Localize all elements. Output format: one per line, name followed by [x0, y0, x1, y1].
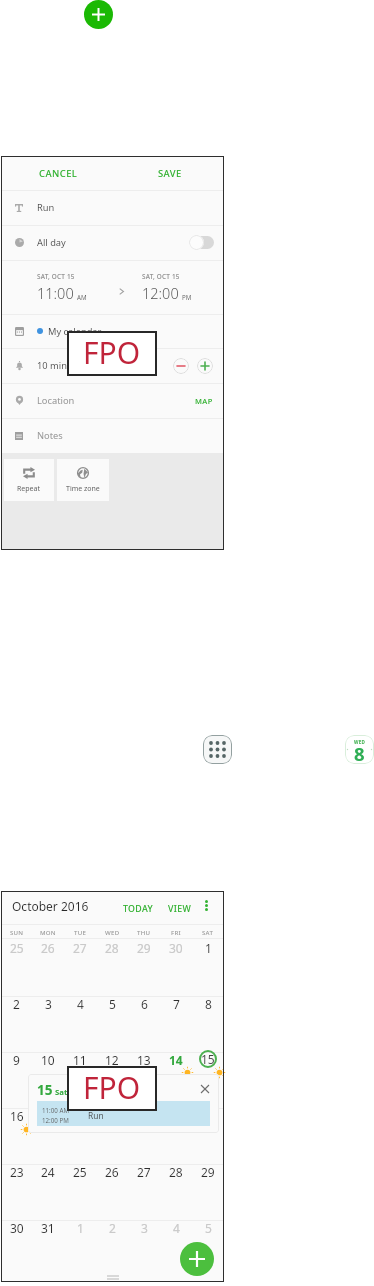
staticText: 2	[13, 996, 20, 1012]
button[interactable]: 21	[160, 1108, 192, 1164]
button[interactable]: 14	[160, 1052, 192, 1108]
button[interactable]	[190, 235, 215, 250]
button[interactable]: 12	[96, 1052, 128, 1108]
staticText: 19	[105, 1108, 119, 1124]
staticText: All day	[37, 236, 66, 249]
staticText: TUE	[74, 928, 87, 936]
button[interactable]: 4	[64, 996, 96, 1052]
button[interactable]: 25	[1, 940, 32, 996]
button[interactable]: 5	[192, 1220, 224, 1276]
button[interactable]: 26	[96, 1164, 128, 1220]
button[interactable]: 2	[1, 996, 32, 1052]
staticText: FPO	[83, 332, 141, 373]
button[interactable]: 17	[32, 1108, 64, 1164]
button[interactable]: More options	[196, 895, 217, 916]
button[interactable]: Location	[1, 383, 224, 418]
staticText: 1	[205, 940, 212, 956]
button[interactable]: Create event	[180, 1242, 214, 1276]
staticText: SAT, OCT 15	[142, 272, 180, 281]
button[interactable]: Repeat	[4, 459, 54, 501]
staticText: MAP	[195, 396, 213, 406]
button[interactable]: Increase reminder	[197, 358, 213, 374]
button[interactable]: 30	[160, 940, 192, 996]
button[interactable]: 1	[192, 940, 224, 996]
staticText: 18	[73, 1108, 87, 1124]
button[interactable]: 29	[128, 940, 160, 996]
button[interactable]: Apps	[203, 735, 232, 764]
button[interactable]: 3	[128, 1220, 160, 1276]
staticText: MON	[40, 928, 56, 936]
staticText: 27	[73, 940, 87, 956]
button[interactable]: 11	[64, 1052, 96, 1108]
staticText: 12:00 PM	[42, 1116, 69, 1124]
button[interactable]: 2	[96, 1220, 128, 1276]
button[interactable]: 4	[160, 1220, 192, 1276]
staticText: CANCEL	[39, 167, 78, 180]
button[interactable]: Decrease reminder	[173, 358, 189, 374]
button[interactable]: Add event	[84, 0, 113, 29]
button[interactable]: 16	[1, 1108, 32, 1164]
staticText: 7	[173, 996, 180, 1012]
staticText: 1	[77, 1220, 84, 1236]
staticText: 28	[105, 940, 119, 956]
button[interactable]: 20	[128, 1108, 160, 1164]
button[interactable]: 25	[64, 1164, 96, 1220]
button[interactable]: 6	[128, 996, 160, 1052]
staticText: 30	[10, 1220, 24, 1236]
button[interactable]: 23	[1, 1164, 32, 1220]
staticText: 13	[137, 1052, 151, 1068]
button[interactable]: Close	[197, 1081, 213, 1097]
button[interactable]: 5	[96, 996, 128, 1052]
button[interactable]: Run	[1, 190, 224, 225]
button[interactable]: MAP	[195, 396, 213, 406]
button[interactable]: 1	[64, 1220, 96, 1276]
staticText: WED	[354, 739, 366, 745]
staticText: Time zone	[66, 484, 100, 494]
button[interactable]: VIEW	[168, 903, 192, 915]
button[interactable]: 27	[64, 940, 96, 996]
button[interactable]: 9	[1, 1052, 32, 1108]
button[interactable]: SAT, OCT 15	[1, 260, 224, 314]
button[interactable]: 24	[32, 1164, 64, 1220]
button[interactable]: 11:00 AM	[37, 1101, 210, 1126]
button[interactable]: TODAY	[123, 903, 154, 915]
staticText: 15	[201, 1051, 215, 1067]
button[interactable]: 31	[32, 1220, 64, 1276]
button[interactable]: 19	[96, 1108, 128, 1164]
button[interactable]: 29	[192, 1164, 224, 1220]
staticText: SAVE	[158, 167, 182, 180]
button[interactable]: 15	[192, 1052, 224, 1108]
staticText: Run	[37, 201, 55, 214]
staticText: 24	[41, 1164, 55, 1180]
staticText: October 2016	[12, 898, 89, 914]
button[interactable]: 18	[64, 1108, 96, 1164]
button[interactable]: 7	[160, 996, 192, 1052]
button[interactable]: All day	[1, 225, 224, 260]
staticText: 12	[105, 1052, 119, 1068]
button[interactable]: Time zone	[57, 459, 109, 501]
staticText: 20	[137, 1108, 151, 1124]
button[interactable]: 26	[32, 940, 64, 996]
button[interactable]: 27	[128, 1164, 160, 1220]
staticText: 3	[141, 1220, 148, 1236]
staticText: 12:00	[142, 283, 179, 303]
button[interactable]: 10 min	[1, 348, 224, 383]
button[interactable]: 28	[96, 940, 128, 996]
staticText: Location	[37, 394, 75, 407]
button[interactable]: Notes	[1, 418, 224, 453]
button[interactable]: SAVE	[158, 167, 182, 180]
button[interactable]: 28	[160, 1164, 192, 1220]
button[interactable]: 8	[192, 996, 224, 1052]
staticText: FRI	[171, 928, 181, 936]
staticText: VIEW	[168, 903, 192, 915]
button[interactable]: 3	[32, 996, 64, 1052]
button[interactable]: Calendar	[345, 735, 374, 764]
button[interactable]: 13	[128, 1052, 160, 1108]
button[interactable]: My calendar	[1, 314, 224, 348]
button[interactable]: 10	[32, 1052, 64, 1108]
button[interactable]: 22	[192, 1108, 224, 1164]
staticText: 4	[77, 996, 84, 1012]
button[interactable]: 30	[1, 1220, 32, 1276]
button[interactable]: CANCEL	[39, 167, 78, 180]
